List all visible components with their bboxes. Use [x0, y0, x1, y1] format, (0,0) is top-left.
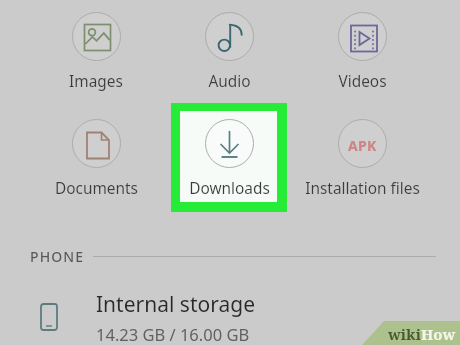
- button[interactable]: Audio: [159, 12, 299, 92]
- button[interactable]: APK: [292, 119, 432, 199]
- staticText: wiki: [388, 324, 421, 344]
- staticText: Documents: [55, 178, 138, 199]
- button[interactable]: Documents: [26, 119, 166, 199]
- staticText: Internal storage: [96, 290, 255, 319]
- other: wikiHow watermark: [362, 321, 460, 345]
- button[interactable]: Internal storage: [0, 288, 460, 345]
- button[interactable]: Downloads: [159, 119, 299, 199]
- staticText: Images: [69, 71, 123, 92]
- staticText: Videos: [338, 71, 387, 92]
- staticText: APK: [348, 136, 377, 155]
- staticText: 14.23 GB / 16.00 GB: [96, 323, 250, 345]
- button[interactable]: Videos: [292, 12, 432, 92]
- staticText: Installation files: [305, 178, 420, 199]
- staticText: Downloads: [189, 178, 270, 199]
- staticText: PHONE: [30, 247, 85, 266]
- staticText: How: [421, 324, 456, 344]
- button[interactable]: Images: [26, 12, 166, 92]
- staticText: Audio: [208, 71, 251, 92]
